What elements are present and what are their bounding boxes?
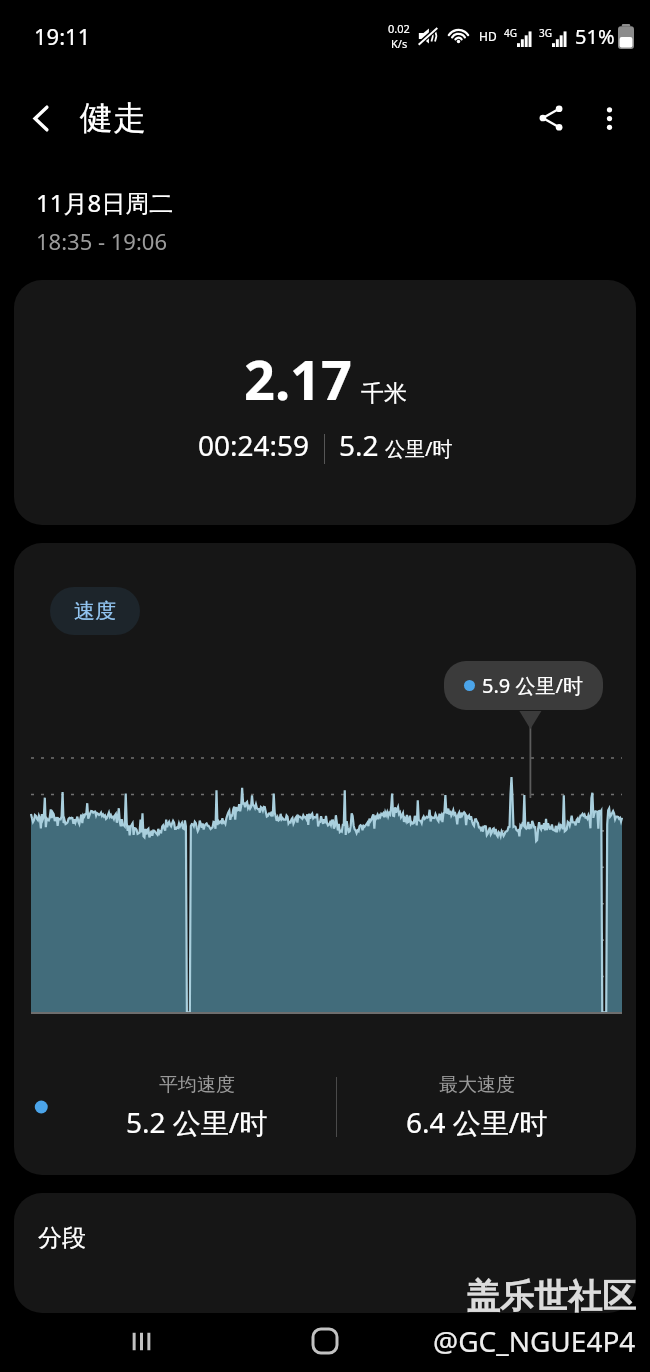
- button[interactable]: 5.9 公里/时: [444, 661, 603, 710]
- staticText: K/s: [391, 36, 408, 51]
- button[interactable]: Back: [12, 89, 70, 147]
- button[interactable]: Home: [297, 1313, 353, 1369]
- staticText: 0.02: [388, 21, 410, 36]
- staticText: HD: [479, 28, 497, 44]
- staticText: 19:11: [34, 21, 91, 51]
- button[interactable]: Recent apps: [113, 1313, 169, 1369]
- staticText: 5.9 公里/时: [482, 672, 583, 699]
- staticText: 分段: [38, 1223, 86, 1253]
- staticText: 平均速度: [159, 1073, 235, 1097]
- staticText: 4G: [504, 26, 517, 40]
- staticText: 2.17: [244, 342, 352, 416]
- button[interactable]: 分段: [14, 1193, 636, 1313]
- staticText: 千米: [361, 379, 407, 408]
- staticText: 公里/时: [385, 435, 453, 462]
- staticText: 3G: [539, 26, 552, 40]
- staticText: 5.2 公里/时: [126, 1103, 268, 1141]
- staticText: 最大速度: [439, 1073, 515, 1097]
- staticText: 健走: [80, 97, 146, 139]
- staticText: 5.2: [339, 426, 379, 464]
- button[interactable]: Share: [522, 89, 580, 147]
- staticText: 51%: [575, 23, 615, 50]
- staticText: 盖乐世社区: [466, 1275, 636, 1318]
- staticText: 11月8日周二: [36, 186, 174, 219]
- staticText: 6.4 公里/时: [406, 1103, 548, 1141]
- button[interactable]: 2.17: [14, 280, 636, 525]
- staticText: 00:24:59: [198, 426, 310, 464]
- button[interactable]: 速度: [50, 587, 140, 635]
- staticText: 速度: [74, 598, 116, 624]
- staticText: 18:35 - 19:06: [36, 226, 167, 256]
- button[interactable]: More options: [580, 89, 638, 147]
- staticText: @GC_NGUE4P4: [433, 1322, 636, 1360]
